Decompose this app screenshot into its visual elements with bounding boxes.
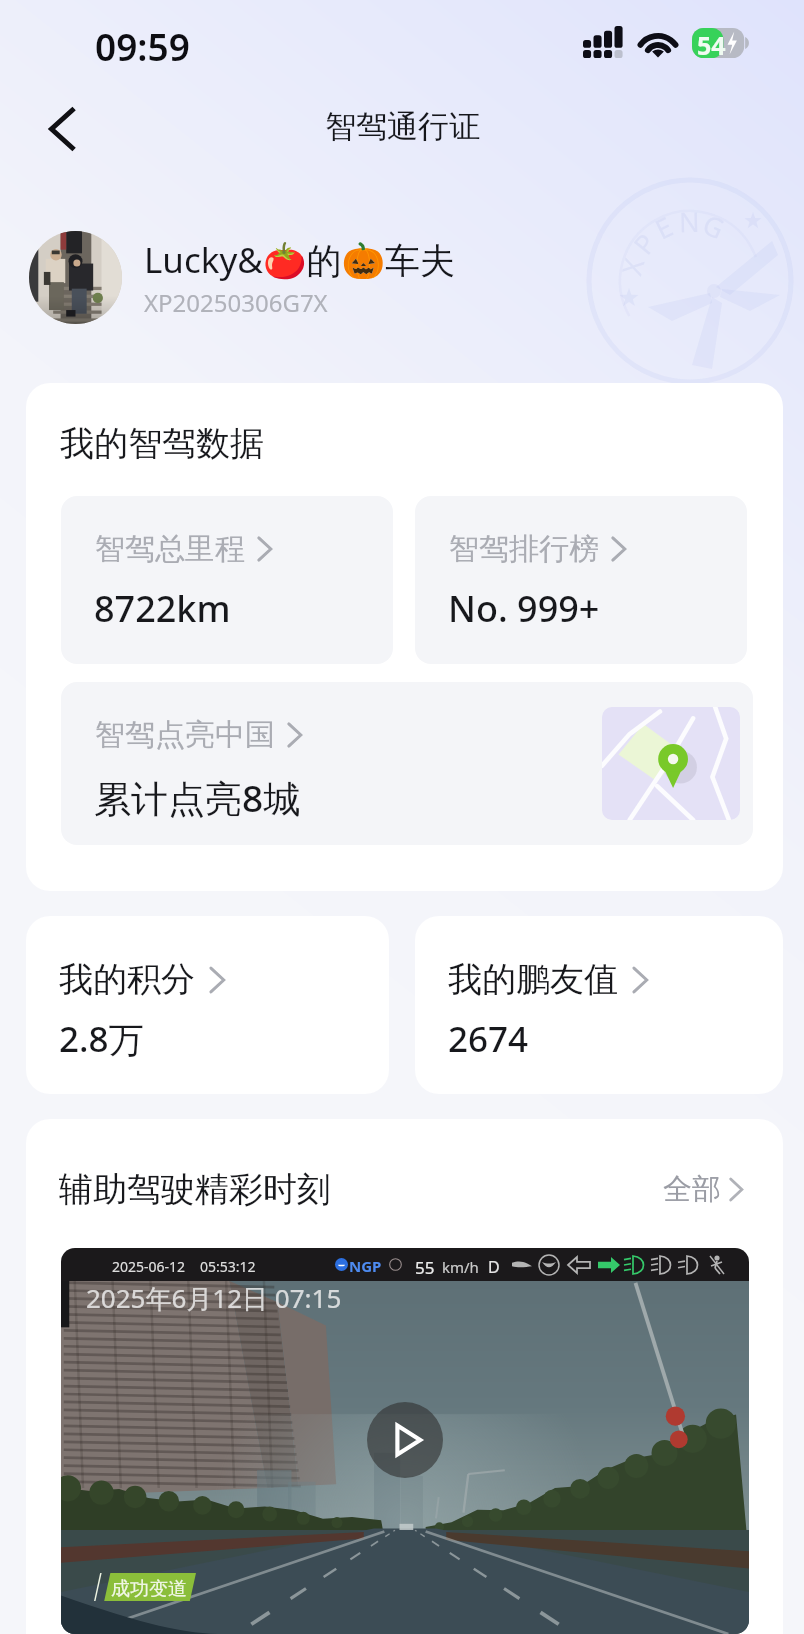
staticText: NGP [349, 1256, 382, 1276]
staticText: No. 999+ [448, 584, 600, 633]
staticText: E [649, 207, 677, 243]
staticText: 成功变道 [111, 1577, 187, 1601]
staticText: 2025年6月12日 07:15 [86, 1280, 342, 1316]
button[interactable]: Play video [61, 1248, 749, 1634]
staticText: 智驾点亮中国 [95, 716, 275, 754]
staticText: 我的鹏友值 [448, 958, 618, 1001]
staticText: Lucky&🍅的🎃车夫 [144, 236, 456, 284]
staticText: km/h [442, 1257, 479, 1277]
staticText: 2674 [448, 1015, 529, 1063]
staticText: 05:53:12 [200, 1257, 256, 1276]
staticText: 我的积分 [59, 958, 195, 1001]
staticText: 全部 [663, 1171, 721, 1208]
staticText: 09:59 [95, 21, 190, 71]
staticText: 54 [697, 28, 726, 58]
button[interactable]: 我的积分 [26, 916, 389, 1094]
button[interactable]: Back [28, 96, 94, 162]
staticText: 智驾排行榜 [449, 530, 599, 568]
staticText: 我的智驾数据 [60, 422, 264, 465]
staticText: 2025-06-12 [112, 1257, 186, 1276]
staticText: N [679, 203, 700, 235]
staticText: X [612, 254, 647, 278]
staticText: 2.8万 [59, 1015, 144, 1063]
staticText: 8722km [94, 584, 231, 633]
staticText: P [625, 225, 660, 259]
staticText: 55 [415, 1256, 435, 1279]
staticText: 辅助驾驶精彩时刻 [59, 1168, 331, 1211]
button[interactable]: 智驾排行榜 [415, 496, 747, 664]
staticText: G [699, 205, 731, 243]
staticText: D [488, 1256, 500, 1278]
staticText: 累计点亮8城 [94, 772, 301, 823]
button[interactable]: 智驾总里程 [61, 496, 393, 664]
button[interactable]: 我的鹏友值 [415, 916, 783, 1094]
button[interactable]: 智驾点亮中国 [61, 682, 753, 845]
staticText: 智驾总里程 [95, 530, 245, 568]
button[interactable]: 全部 [663, 1171, 743, 1208]
staticText: 智驾通行证 [325, 107, 480, 146]
staticText: XP20250306G7X [144, 286, 328, 319]
button[interactable]: Lucky&🍅的🎃车夫 [29, 231, 456, 324]
